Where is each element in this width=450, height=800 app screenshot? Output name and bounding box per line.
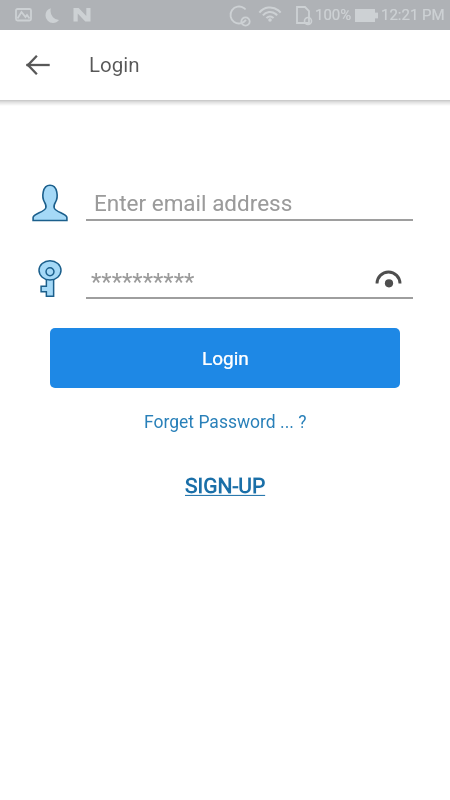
- button[interactable]: SIGN-UP: [177, 470, 274, 503]
- staticText: Login: [202, 347, 249, 369]
- staticText: Enter email address: [94, 190, 293, 216]
- button[interactable]: Login: [50, 328, 400, 388]
- staticText: 100%: [315, 6, 352, 24]
- button[interactable]: **********: [86, 264, 413, 299]
- staticText: SIGN-UP: [185, 474, 266, 499]
- staticText: Forget Password ... ?: [144, 412, 307, 433]
- staticText: **********: [91, 268, 195, 296]
- staticText: Login: [89, 53, 140, 77]
- button[interactable]: Enter email address: [86, 186, 413, 221]
- staticText: 12:21 PM: [381, 6, 445, 24]
- button[interactable]: Show password: [370, 265, 404, 295]
- button[interactable]: Forget Password ... ?: [136, 408, 315, 437]
- button[interactable]: Back: [3, 30, 73, 100]
